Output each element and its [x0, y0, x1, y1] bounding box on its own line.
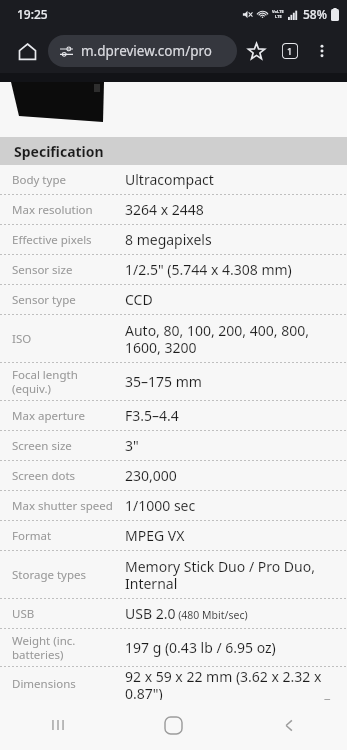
button[interactable]: Tabs	[273, 34, 307, 68]
button[interactable]: Dimensions	[0, 667, 347, 700]
staticText: Dimensions	[12, 676, 114, 692]
staticText: Effective pixels	[12, 232, 114, 248]
button[interactable]: Recents	[0, 700, 115, 750]
staticText: VoLTE	[272, 9, 284, 14]
button[interactable]: ISO	[0, 315, 347, 362]
staticText: ISO	[12, 331, 114, 347]
staticText: Max aperture	[12, 408, 114, 424]
staticText: Sensor type	[12, 292, 114, 308]
button[interactable]: More options	[307, 36, 337, 66]
button[interactable]: Sensor size	[0, 255, 347, 284]
staticText: CCD	[125, 290, 153, 309]
staticText: Body type	[12, 172, 114, 188]
button[interactable]: Screen size	[0, 431, 347, 460]
button[interactable]: USB	[0, 599, 347, 628]
button[interactable]: Max aperture	[0, 401, 347, 430]
staticText: 3"	[125, 436, 139, 455]
staticText: USB	[12, 606, 114, 622]
staticText: Sensor size	[12, 262, 114, 278]
staticText: 3264 x 2448	[125, 200, 204, 219]
staticText: Screen dots	[12, 468, 114, 484]
staticText: MPEG VX	[125, 526, 185, 545]
staticText: USB 2.0 (480 Mbit/sec)	[125, 604, 248, 623]
staticText: Screen size	[12, 438, 114, 454]
staticText: Storage types	[12, 567, 114, 583]
button[interactable]: Home	[10, 34, 44, 68]
staticText: 19:25	[17, 6, 48, 22]
button[interactable]: Bookmark	[239, 34, 273, 68]
staticText: Focal length (equiv.)	[12, 367, 114, 396]
staticText: 58%	[303, 6, 327, 22]
staticText: Ultracompact	[125, 170, 214, 189]
staticText: 35–175 mm	[125, 372, 202, 391]
staticText: LTE	[275, 14, 282, 19]
button[interactable]: Format	[0, 521, 347, 550]
button[interactable]: Max shutter speed	[0, 491, 347, 520]
button[interactable]: Weight (inc. batteries)	[0, 629, 347, 666]
staticText: 230,000	[125, 466, 177, 485]
button[interactable]: Body type	[0, 165, 347, 194]
button[interactable]: Focal length (equiv.)	[0, 363, 347, 400]
button[interactable]: m.dpreview.com/pro	[48, 35, 237, 67]
staticText: 8 megapixels	[125, 230, 212, 249]
staticText: Auto, 80, 100, 200, 400, 800, 1600, 3200	[125, 321, 335, 357]
staticText: Memory Stick Duo / Pro Duo, Internal	[125, 557, 335, 593]
staticText: 1	[287, 45, 293, 57]
button[interactable]: Storage types	[0, 551, 347, 598]
staticText: 92 x 59 x 22 mm (3.62 x 2.32 x 0.87")	[125, 667, 335, 700]
button[interactable]: Screen dots	[0, 461, 347, 490]
button[interactable]: Sensor type	[0, 285, 347, 314]
button[interactable]: Max resolution	[0, 195, 347, 224]
staticText: 1/2.5" (5.744 x 4.308 mm)	[125, 260, 292, 279]
button[interactable]: Back	[231, 700, 347, 750]
staticText: Format	[12, 528, 114, 544]
button[interactable]: Home	[115, 700, 231, 750]
staticText: Max shutter speed	[12, 498, 114, 514]
staticText: m.dpreview.com/pro	[81, 42, 212, 60]
staticText: 197 g (0.43 lb / 6.95 oz)	[125, 638, 276, 657]
staticText: Specification	[14, 142, 104, 161]
staticText: Weight (inc. batteries)	[12, 633, 114, 662]
staticText: 1/1000 sec	[125, 496, 196, 515]
button[interactable]: Effective pixels	[0, 225, 347, 254]
staticText: F3.5–4.4	[125, 406, 179, 425]
staticText: Max resolution	[12, 202, 114, 218]
